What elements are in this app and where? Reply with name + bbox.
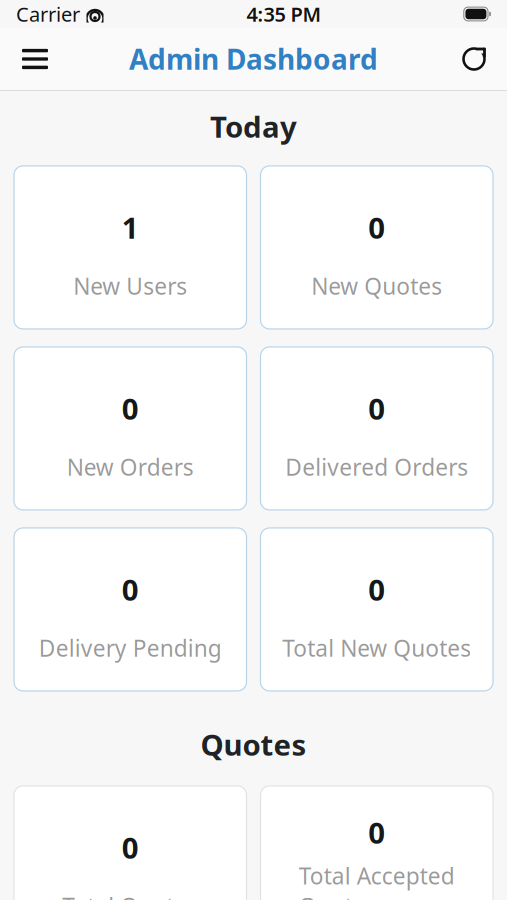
staticText: New Users xyxy=(73,271,187,301)
button[interactable]: 0 xyxy=(260,786,493,900)
staticText: 4:35 PM xyxy=(246,1,321,27)
staticText: Total Accepted Quotes xyxy=(299,861,455,900)
staticText: 0 xyxy=(368,208,385,247)
staticText: 0 xyxy=(368,813,385,852)
staticText: Today xyxy=(210,107,297,146)
staticText: Total Quotes xyxy=(62,891,198,900)
button[interactable]: Menu xyxy=(6,33,64,85)
staticText: 0 xyxy=(368,570,385,609)
staticText: 0 xyxy=(368,389,385,428)
staticText: Delivery Pending xyxy=(39,633,222,663)
button[interactable]: 0 xyxy=(14,347,246,510)
staticText: New Orders xyxy=(67,452,194,482)
staticText: 0 xyxy=(122,570,139,609)
button[interactable]: 1 xyxy=(14,166,246,329)
staticText: Admin Dashboard xyxy=(129,40,378,78)
button[interactable]: 0 xyxy=(260,528,493,691)
button[interactable]: 0 xyxy=(14,786,246,900)
button[interactable]: 0 xyxy=(14,528,246,691)
staticText: 1 xyxy=(122,208,139,247)
staticText: Carrier xyxy=(16,1,80,27)
staticText: 0 xyxy=(122,828,139,867)
staticText: New Quotes xyxy=(311,271,442,301)
button[interactable]: 0 xyxy=(260,347,493,510)
button[interactable]: 0 xyxy=(260,166,493,329)
staticText: Quotes xyxy=(200,725,306,764)
staticText: Delivered Orders xyxy=(285,452,468,482)
button[interactable]: Refresh xyxy=(447,34,501,84)
staticText: Total New Quotes xyxy=(282,633,471,663)
staticText: 0 xyxy=(122,389,139,428)
